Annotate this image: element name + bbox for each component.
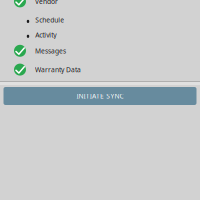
- staticText: Activity: [35, 30, 56, 39]
- staticText: Vendor: [35, 0, 58, 6]
- staticText: Schedule: [35, 16, 64, 24]
- button[interactable]: Schedule: [26, 14, 200, 29]
- button[interactable]: Messages: [14, 43, 200, 58]
- staticText: INITIATE SYNC: [76, 92, 124, 100]
- staticText: Warranty Data: [35, 65, 81, 74]
- button[interactable]: Warranty Data: [14, 62, 200, 77]
- button[interactable]: Vendor: [14, 0, 200, 9]
- button[interactable]: INITIATE SYNC: [3, 87, 196, 105]
- button[interactable]: Activity: [26, 29, 200, 44]
- staticText: Messages: [35, 46, 66, 55]
